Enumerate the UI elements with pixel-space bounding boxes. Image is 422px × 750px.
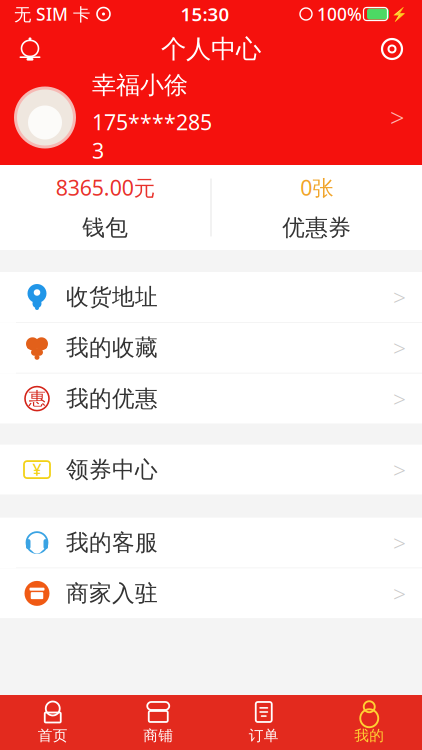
- button[interactable]: 收货地址: [0, 272, 422, 323]
- staticText: 无 SIM 卡: [14, 2, 90, 25]
- staticText: >: [393, 578, 406, 608]
- staticText: 优惠券: [282, 214, 351, 241]
- button[interactable]: 设置: [370, 29, 414, 69]
- button[interactable]: 通知: [8, 29, 52, 69]
- staticText: 15:30: [180, 2, 229, 26]
- button[interactable]: 我的客服: [0, 518, 422, 568]
- button[interactable]: 0张: [211, 165, 422, 250]
- staticText: 领券中心: [66, 456, 158, 483]
- staticText: 175****2853: [92, 108, 212, 165]
- staticText: 我的收藏: [66, 334, 158, 362]
- staticText: >: [393, 527, 406, 558]
- staticText: 8365.00元: [56, 173, 155, 202]
- button[interactable]: 首页: [0, 694, 105, 750]
- staticText: 我的: [354, 726, 384, 744]
- staticText: 惠: [28, 388, 45, 409]
- staticText: >: [393, 383, 406, 414]
- staticText: 首页: [38, 726, 68, 744]
- staticText: 商铺: [143, 726, 173, 744]
- staticText: 商家入驻: [66, 579, 158, 607]
- button[interactable]: 我的收藏: [0, 323, 422, 374]
- button[interactable]: ¥: [0, 445, 422, 495]
- staticText: 订单: [249, 726, 279, 744]
- button[interactable]: 订单: [211, 694, 316, 750]
- staticText: >: [393, 333, 406, 363]
- staticText: ⚡: [391, 6, 408, 22]
- staticText: 我的客服: [66, 529, 158, 556]
- staticText: 收货地址: [66, 283, 158, 311]
- staticText: 钱包: [82, 214, 128, 241]
- button[interactable]: 商家入驻: [0, 568, 422, 618]
- button[interactable]: 商铺: [105, 694, 211, 750]
- staticText: 0张: [300, 173, 333, 202]
- staticText: >: [393, 454, 406, 485]
- button[interactable]: 惠: [0, 374, 422, 424]
- staticText: 我的优惠: [66, 385, 158, 412]
- button[interactable]: 8365.00元: [0, 165, 210, 250]
- button[interactable]: 幸福小徐: [0, 70, 422, 165]
- button[interactable]: 我的: [316, 694, 422, 750]
- staticText: >: [390, 101, 404, 134]
- staticText: >: [393, 282, 406, 312]
- staticText: 个人中心: [161, 33, 261, 64]
- staticText: ¥: [32, 459, 41, 480]
- staticText: 100%: [317, 2, 362, 25]
- staticText: 幸福小徐: [92, 70, 188, 100]
